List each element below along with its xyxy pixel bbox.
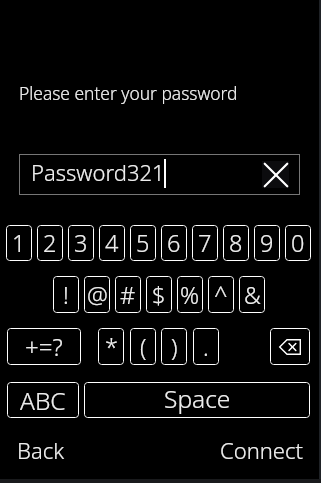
staticText: 4 (105, 227, 119, 259)
button[interactable]: 9 (254, 225, 280, 261)
staticText: 7 (198, 227, 212, 259)
staticText: 0 (291, 227, 305, 259)
button[interactable]: # (115, 276, 141, 313)
staticText: 5 (136, 227, 150, 259)
staticText: ^ (214, 279, 228, 311)
staticText: Please enter your password (19, 81, 238, 105)
button[interactable]: @ (84, 276, 110, 313)
staticText: 8 (229, 227, 243, 259)
button[interactable]: 3 (68, 225, 94, 261)
button[interactable]: 8 (223, 225, 249, 261)
button[interactable]: 6 (161, 225, 187, 261)
staticText: % (180, 279, 200, 311)
staticText: $ (152, 279, 166, 311)
staticText: 3 (74, 227, 88, 259)
staticText: # (120, 279, 136, 311)
staticText: Password321 (31, 157, 165, 187)
button[interactable]: ABC (7, 382, 79, 418)
staticText: ! (63, 279, 69, 311)
button[interactable]: ) (161, 328, 187, 365)
staticText: @ (87, 279, 108, 311)
staticText: & (244, 279, 261, 311)
staticText: ABC (20, 384, 66, 417)
button[interactable]: Space (84, 382, 310, 418)
button[interactable]: ! (53, 276, 79, 313)
button[interactable]: Backspace (270, 328, 310, 365)
staticText: 2 (43, 227, 57, 259)
button[interactable]: $ (146, 276, 172, 313)
button[interactable]: % (177, 276, 203, 313)
button[interactable]: Back (17, 435, 65, 463)
button[interactable]: Clear text (262, 161, 289, 188)
button[interactable]: Connect (220, 435, 303, 463)
button[interactable]: ^ (208, 276, 234, 313)
staticText: * (105, 331, 118, 363)
button[interactable]: 7 (192, 225, 218, 261)
button[interactable]: 5 (130, 225, 156, 261)
staticText: +=? (25, 330, 63, 363)
staticText: 1 (12, 227, 26, 259)
button[interactable]: ( (130, 328, 156, 365)
button[interactable]: 0 (285, 225, 311, 261)
button[interactable]: . (193, 328, 219, 365)
button[interactable]: & (239, 276, 265, 313)
staticText: Space (164, 382, 231, 415)
button[interactable]: +=? (7, 328, 81, 365)
staticText: ) (171, 331, 178, 363)
staticText: Connect (220, 435, 303, 463)
button[interactable]: 1 (6, 225, 32, 261)
staticText: ( (140, 331, 147, 363)
staticText: 9 (260, 227, 274, 259)
button[interactable]: 2 (37, 225, 63, 261)
staticText: Back (17, 435, 65, 463)
staticText: 6 (167, 227, 181, 259)
button[interactable]: * (98, 328, 124, 365)
button[interactable]: 4 (99, 225, 125, 261)
staticText: . (203, 331, 209, 363)
